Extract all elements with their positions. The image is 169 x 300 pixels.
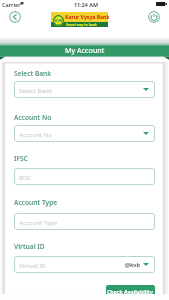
staticText: Carrier (2, 1, 21, 8)
button[interactable]: Account No (14, 125, 155, 142)
staticText: 11:24 AM (74, 1, 99, 8)
staticText: Select Bank (14, 69, 52, 78)
staticText: Account Type (19, 218, 58, 226)
staticText: Account Type (14, 198, 58, 207)
staticText: @kvb (125, 261, 140, 268)
staticText: IFSC (14, 154, 28, 163)
staticText: My Account (65, 45, 105, 55)
staticText: Smart way to bank (66, 22, 97, 26)
button[interactable]: Logout (148, 11, 160, 23)
staticText: Karur Vysya Bank (65, 14, 110, 21)
staticText: KVB (55, 18, 63, 23)
staticText: Virtual ID (19, 261, 46, 269)
staticText: Account No (14, 113, 52, 122)
button[interactable]: IFSC (14, 168, 155, 185)
staticText: Account No (19, 130, 53, 138)
button[interactable]: Account Type (14, 213, 155, 230)
staticText: Select Bank (19, 86, 52, 94)
staticText: IFSC (19, 173, 32, 181)
staticText: Check Availability (107, 288, 154, 294)
button[interactable]: Select Bank (14, 81, 155, 98)
staticText: Virtual ID (14, 242, 45, 251)
button[interactable]: Back (9, 11, 21, 23)
button[interactable]: Check Availability (106, 285, 155, 294)
button[interactable]: Virtual ID (14, 256, 155, 273)
